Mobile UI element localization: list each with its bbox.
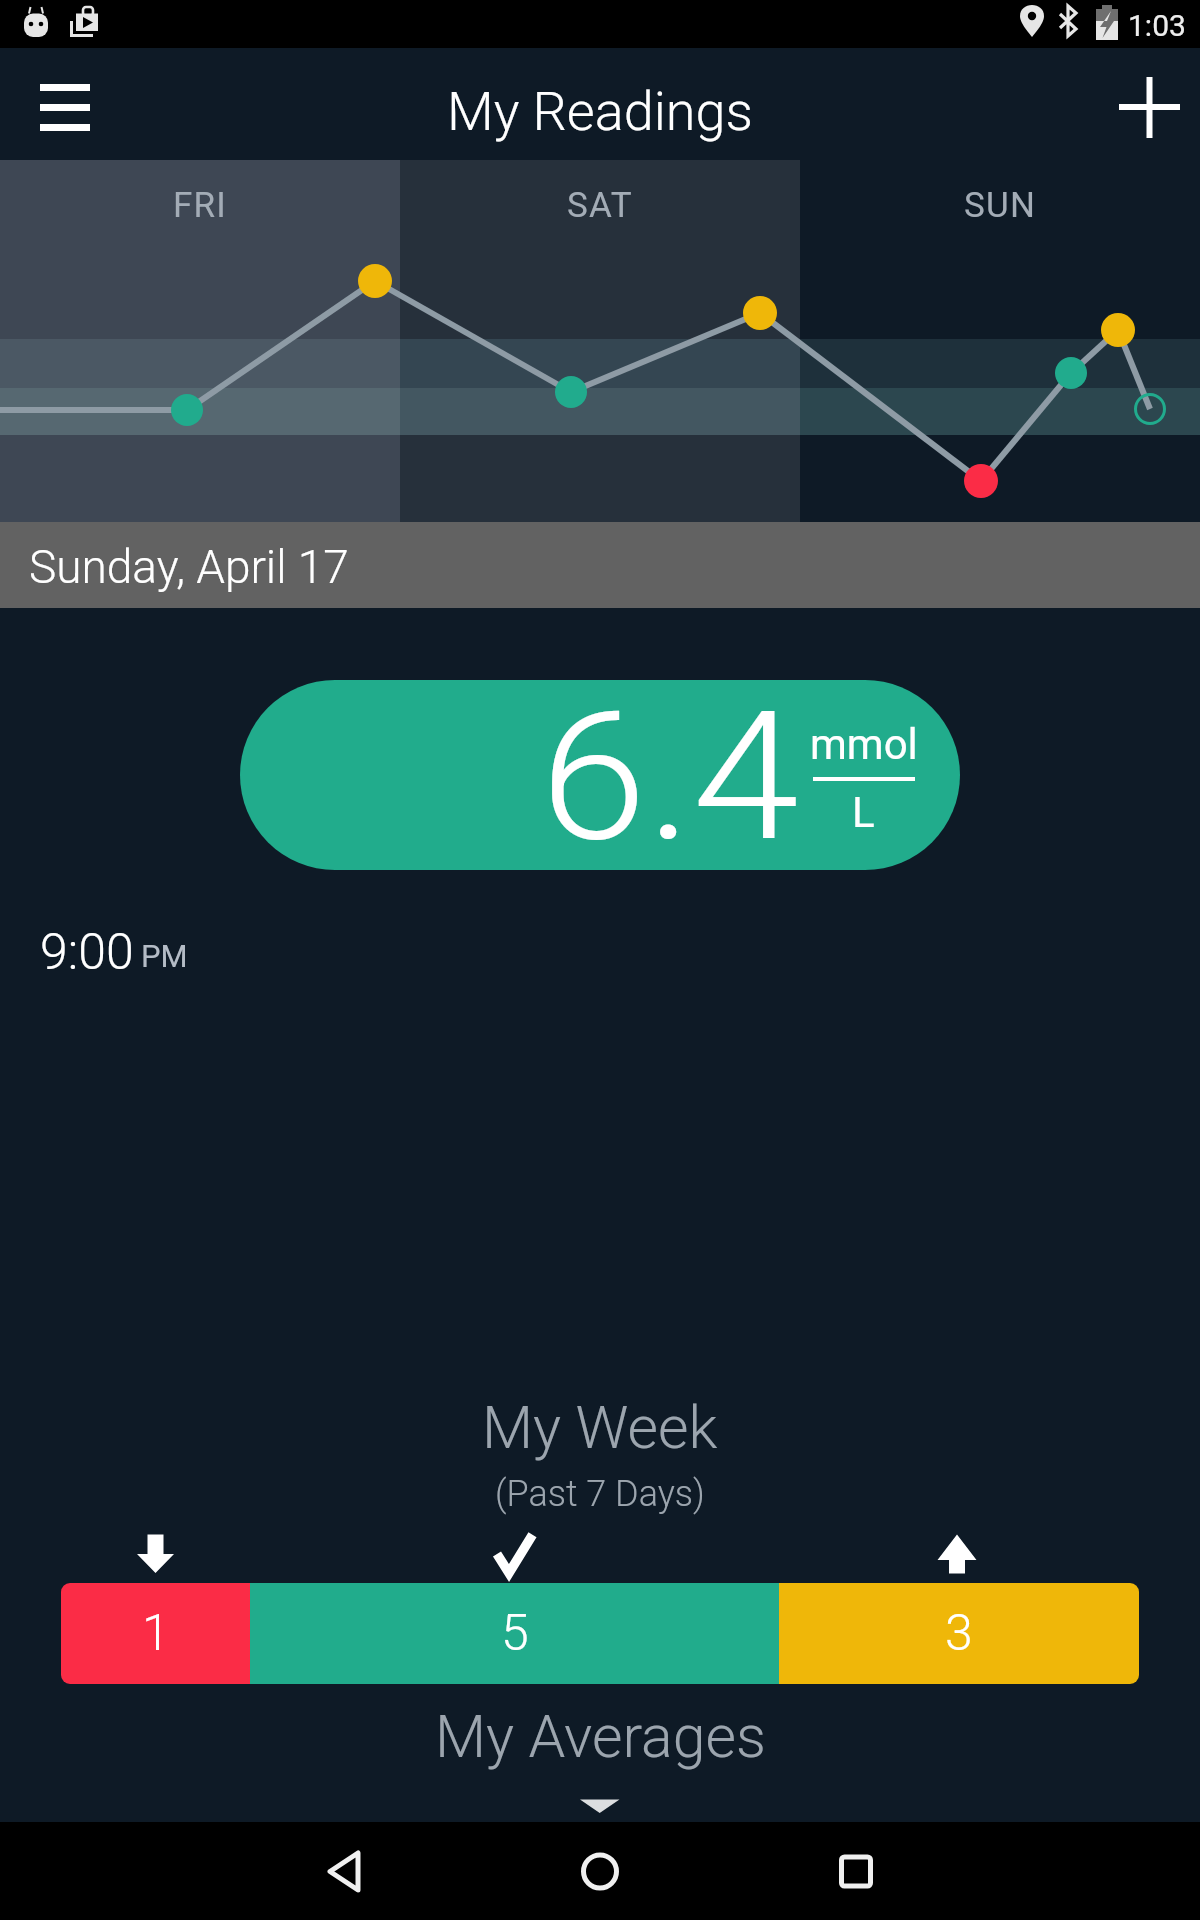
button[interactable]: Recent apps [807,1822,905,1920]
staticText: 1:03 [1128,8,1186,43]
staticText: L [852,788,875,837]
staticText: 3 [945,1604,973,1663]
button[interactable]: Home [551,1822,649,1920]
staticText: SUN [964,185,1037,226]
staticText: My Week [482,1393,718,1462]
staticText: PM [141,938,188,974]
staticText: (Past 7 Days) [495,1473,705,1515]
button[interactable]: Expand My Averages [570,1792,630,1822]
button[interactable]: Add reading [1106,64,1192,150]
staticText: 9:00 [40,923,134,982]
staticText: Sunday, April 17 [29,540,349,594]
staticText: 6.4 [540,680,799,864]
button[interactable]: Back [296,1822,394,1920]
button[interactable]: 1 [61,1583,250,1684]
button[interactable]: 5 [250,1583,779,1684]
staticText: My Readings [447,80,753,143]
staticText: SAT [567,185,633,226]
staticText: My Averages [435,1702,766,1771]
staticText: FRI [173,185,228,226]
button[interactable]: Menu [22,64,108,150]
staticText: 5 [501,1604,529,1663]
staticText: mmol [810,720,918,769]
button[interactable]: Sunday, April 17 [0,522,1200,608]
button[interactable]: 6.4 [240,680,960,870]
button[interactable]: 3 [779,1583,1139,1684]
button[interactable]: My Averages [435,1702,766,1771]
staticText: 1 [142,1604,170,1663]
